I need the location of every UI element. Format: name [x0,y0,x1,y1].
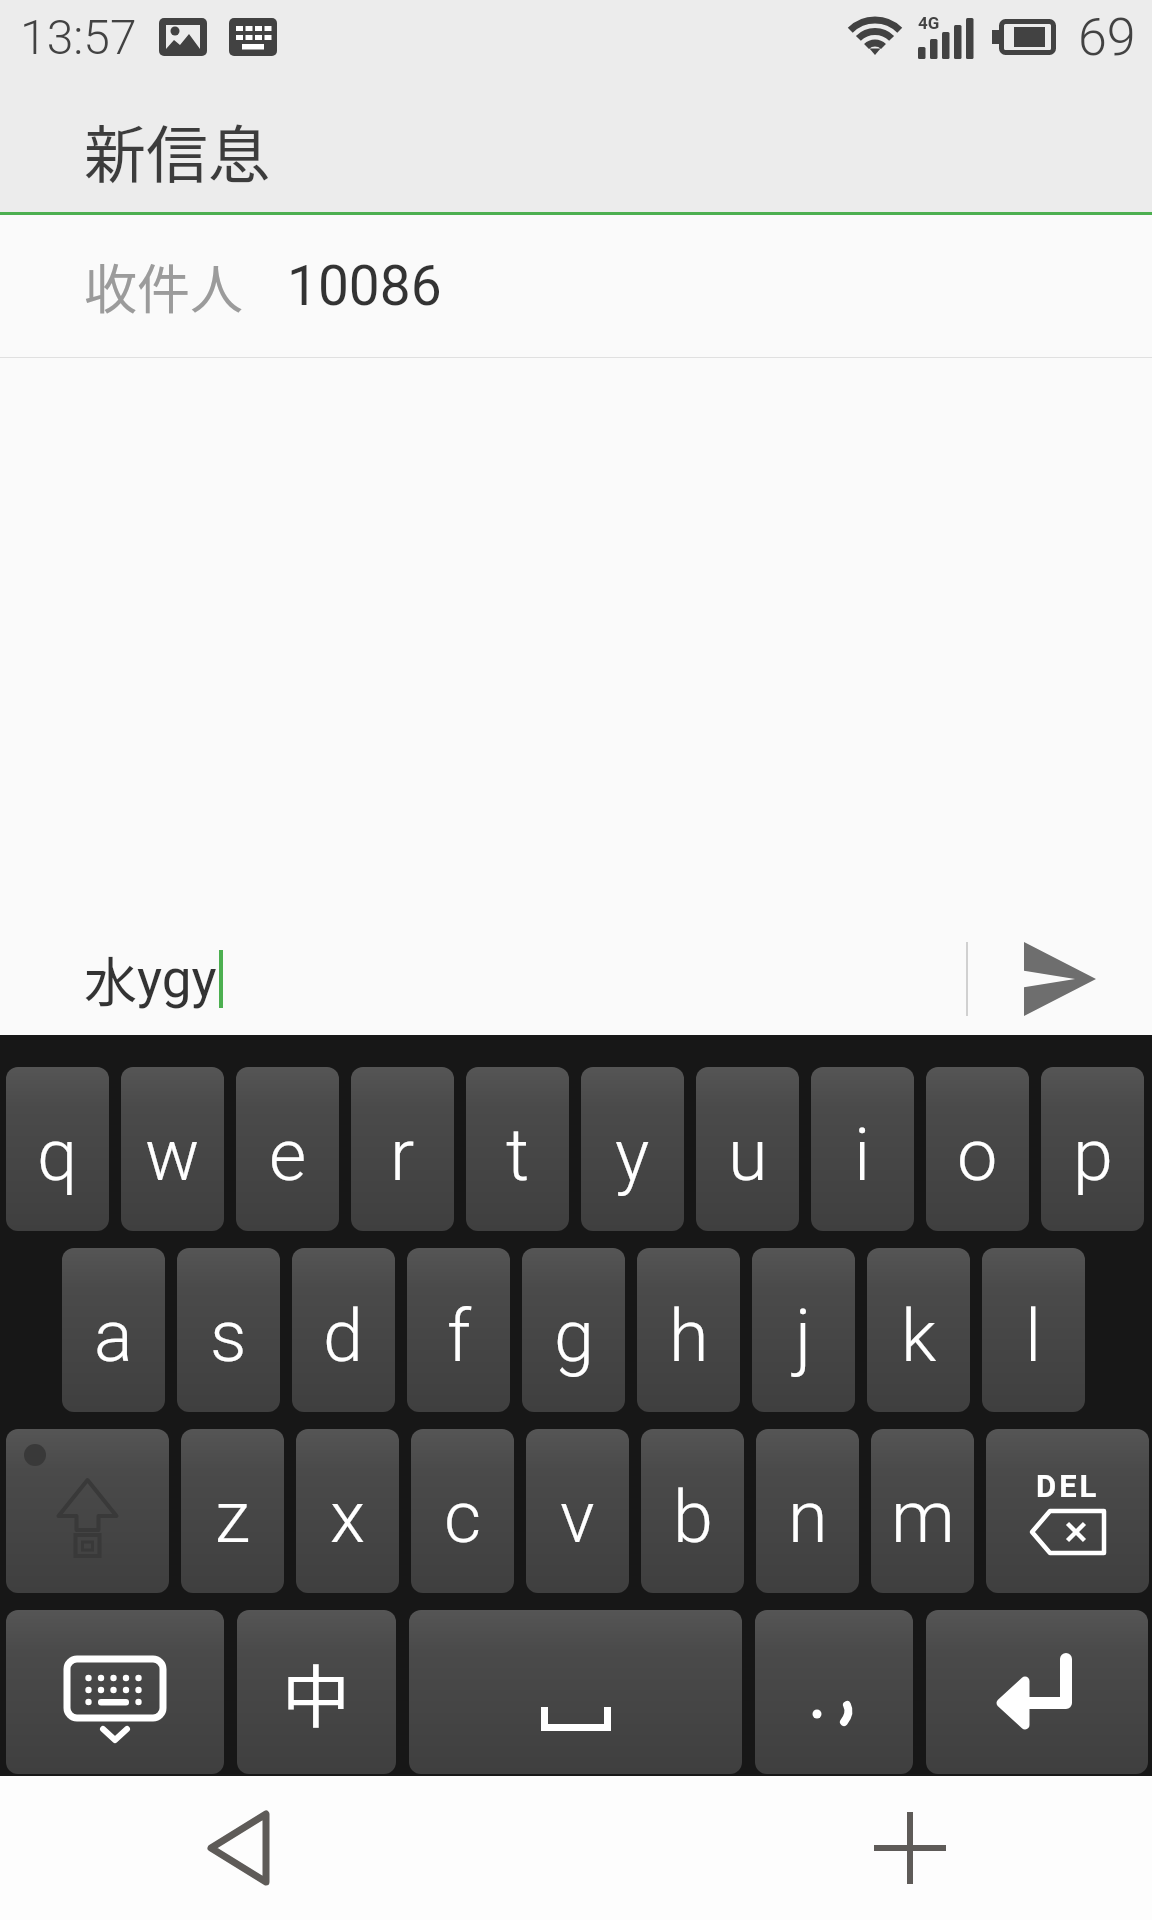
button[interactable]: k [867,1248,970,1412]
staticText: o [957,1113,998,1197]
staticText: i [854,1113,871,1197]
staticText: 4G [918,13,940,33]
button[interactable]: 中 [237,1610,396,1774]
button[interactable]: f [407,1248,510,1412]
button[interactable]: q [6,1067,109,1231]
staticText: p [1073,1113,1113,1197]
staticText: m [891,1475,955,1559]
staticText: d [323,1294,364,1378]
staticText: w [145,1113,200,1197]
button[interactable]: s [177,1248,280,1412]
button[interactable] [755,1610,913,1774]
button[interactable]: r [351,1067,454,1231]
staticText: h [669,1294,709,1378]
staticText: l [1025,1294,1042,1378]
staticText: f [447,1294,471,1378]
staticText: y [615,1113,650,1197]
button[interactable]: t [466,1067,569,1231]
button[interactable] [196,1803,282,1893]
staticText: g [554,1294,594,1378]
staticText: z [215,1475,251,1559]
button[interactable]: h [637,1248,740,1412]
button[interactable] [409,1610,742,1774]
staticText: 10086 [287,254,442,318]
button[interactable]: 收件人 [0,215,1152,358]
button[interactable]: y [581,1067,684,1231]
button[interactable]: d [292,1248,395,1412]
button[interactable]: p [1041,1067,1144,1231]
staticText: DEL [1036,1468,1100,1504]
staticText: 中 [282,1643,351,1741]
button[interactable]: v [526,1429,629,1593]
staticText: ygy [137,948,217,1010]
button[interactable]: g [522,1248,625,1412]
staticText: c [444,1475,482,1559]
staticText: x [330,1475,366,1559]
button[interactable]: m [871,1429,974,1593]
button[interactable]: x [296,1429,399,1593]
button[interactable]: DEL [986,1429,1149,1593]
staticText: 收件人 [84,248,243,325]
button[interactable]: c [411,1429,514,1593]
button[interactable] [1024,942,1096,1016]
staticText: s [210,1294,247,1378]
staticText: j [795,1294,812,1378]
staticText: t [506,1113,530,1197]
staticText: q [37,1113,78,1197]
button[interactable]: i [811,1067,914,1231]
staticText: n [788,1475,828,1559]
staticText: e [269,1113,307,1197]
button[interactable]: l [982,1248,1085,1412]
button[interactable]: b [641,1429,744,1593]
staticText: v [560,1475,595,1559]
staticText: 新信息 [84,106,271,196]
staticText: 水 [84,941,137,1018]
staticText: 13:57 [20,9,137,65]
button[interactable]: j [752,1248,855,1412]
button[interactable]: e [236,1067,339,1231]
staticText: r [390,1113,415,1197]
button[interactable]: w [121,1067,224,1231]
button[interactable] [6,1429,169,1593]
button[interactable]: o [926,1067,1029,1231]
button[interactable] [6,1610,224,1774]
button[interactable]: n [756,1429,859,1593]
staticText: u [728,1113,768,1197]
staticText: 69 [1078,7,1136,68]
button[interactable] [926,1610,1148,1774]
button[interactable] [860,1798,960,1898]
staticText: a [94,1294,133,1378]
staticText: k [901,1294,937,1378]
button[interactable]: z [181,1429,284,1593]
button[interactable]: u [696,1067,799,1231]
staticText: b [673,1475,713,1559]
button[interactable]: a [62,1248,165,1412]
